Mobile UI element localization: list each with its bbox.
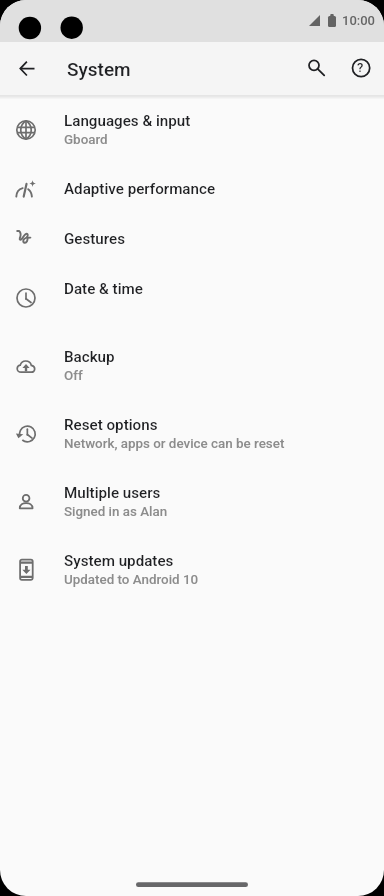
button[interactable]: Languages & input: [0, 96, 384, 164]
staticText: System: [67, 58, 131, 80]
button[interactable]: Multiple users: [0, 468, 384, 536]
staticText: Off: [64, 368, 83, 384]
staticText: Languages & input: [64, 112, 191, 130]
button[interactable]: System updates: [0, 536, 384, 604]
button[interactable]: Adaptive performance: [0, 164, 384, 214]
button[interactable]: Back: [4, 46, 49, 91]
button[interactable]: Help: [339, 46, 384, 91]
staticText: Gboard: [64, 132, 108, 148]
staticText: Updated to Android 10: [64, 572, 199, 588]
staticText: Signed in as Alan: [64, 504, 168, 520]
button[interactable]: Date & time: [0, 264, 384, 332]
button[interactable]: Search: [292, 46, 337, 91]
staticText: Multiple users: [64, 484, 161, 502]
staticText: Date & time: [64, 280, 143, 298]
staticText: 10:00: [342, 13, 375, 28]
staticText: Backup: [64, 348, 115, 366]
staticText: Adaptive performance: [64, 180, 216, 198]
button[interactable]: Reset options: [0, 400, 384, 468]
staticText: Gestures: [64, 230, 125, 248]
staticText: Reset options: [64, 416, 158, 434]
staticText: ?: [357, 60, 364, 75]
staticText: Network, apps or device can be reset: [64, 436, 285, 452]
button[interactable]: Backup: [0, 332, 384, 400]
button[interactable]: Gestures: [0, 214, 384, 264]
staticText: System updates: [64, 552, 174, 570]
